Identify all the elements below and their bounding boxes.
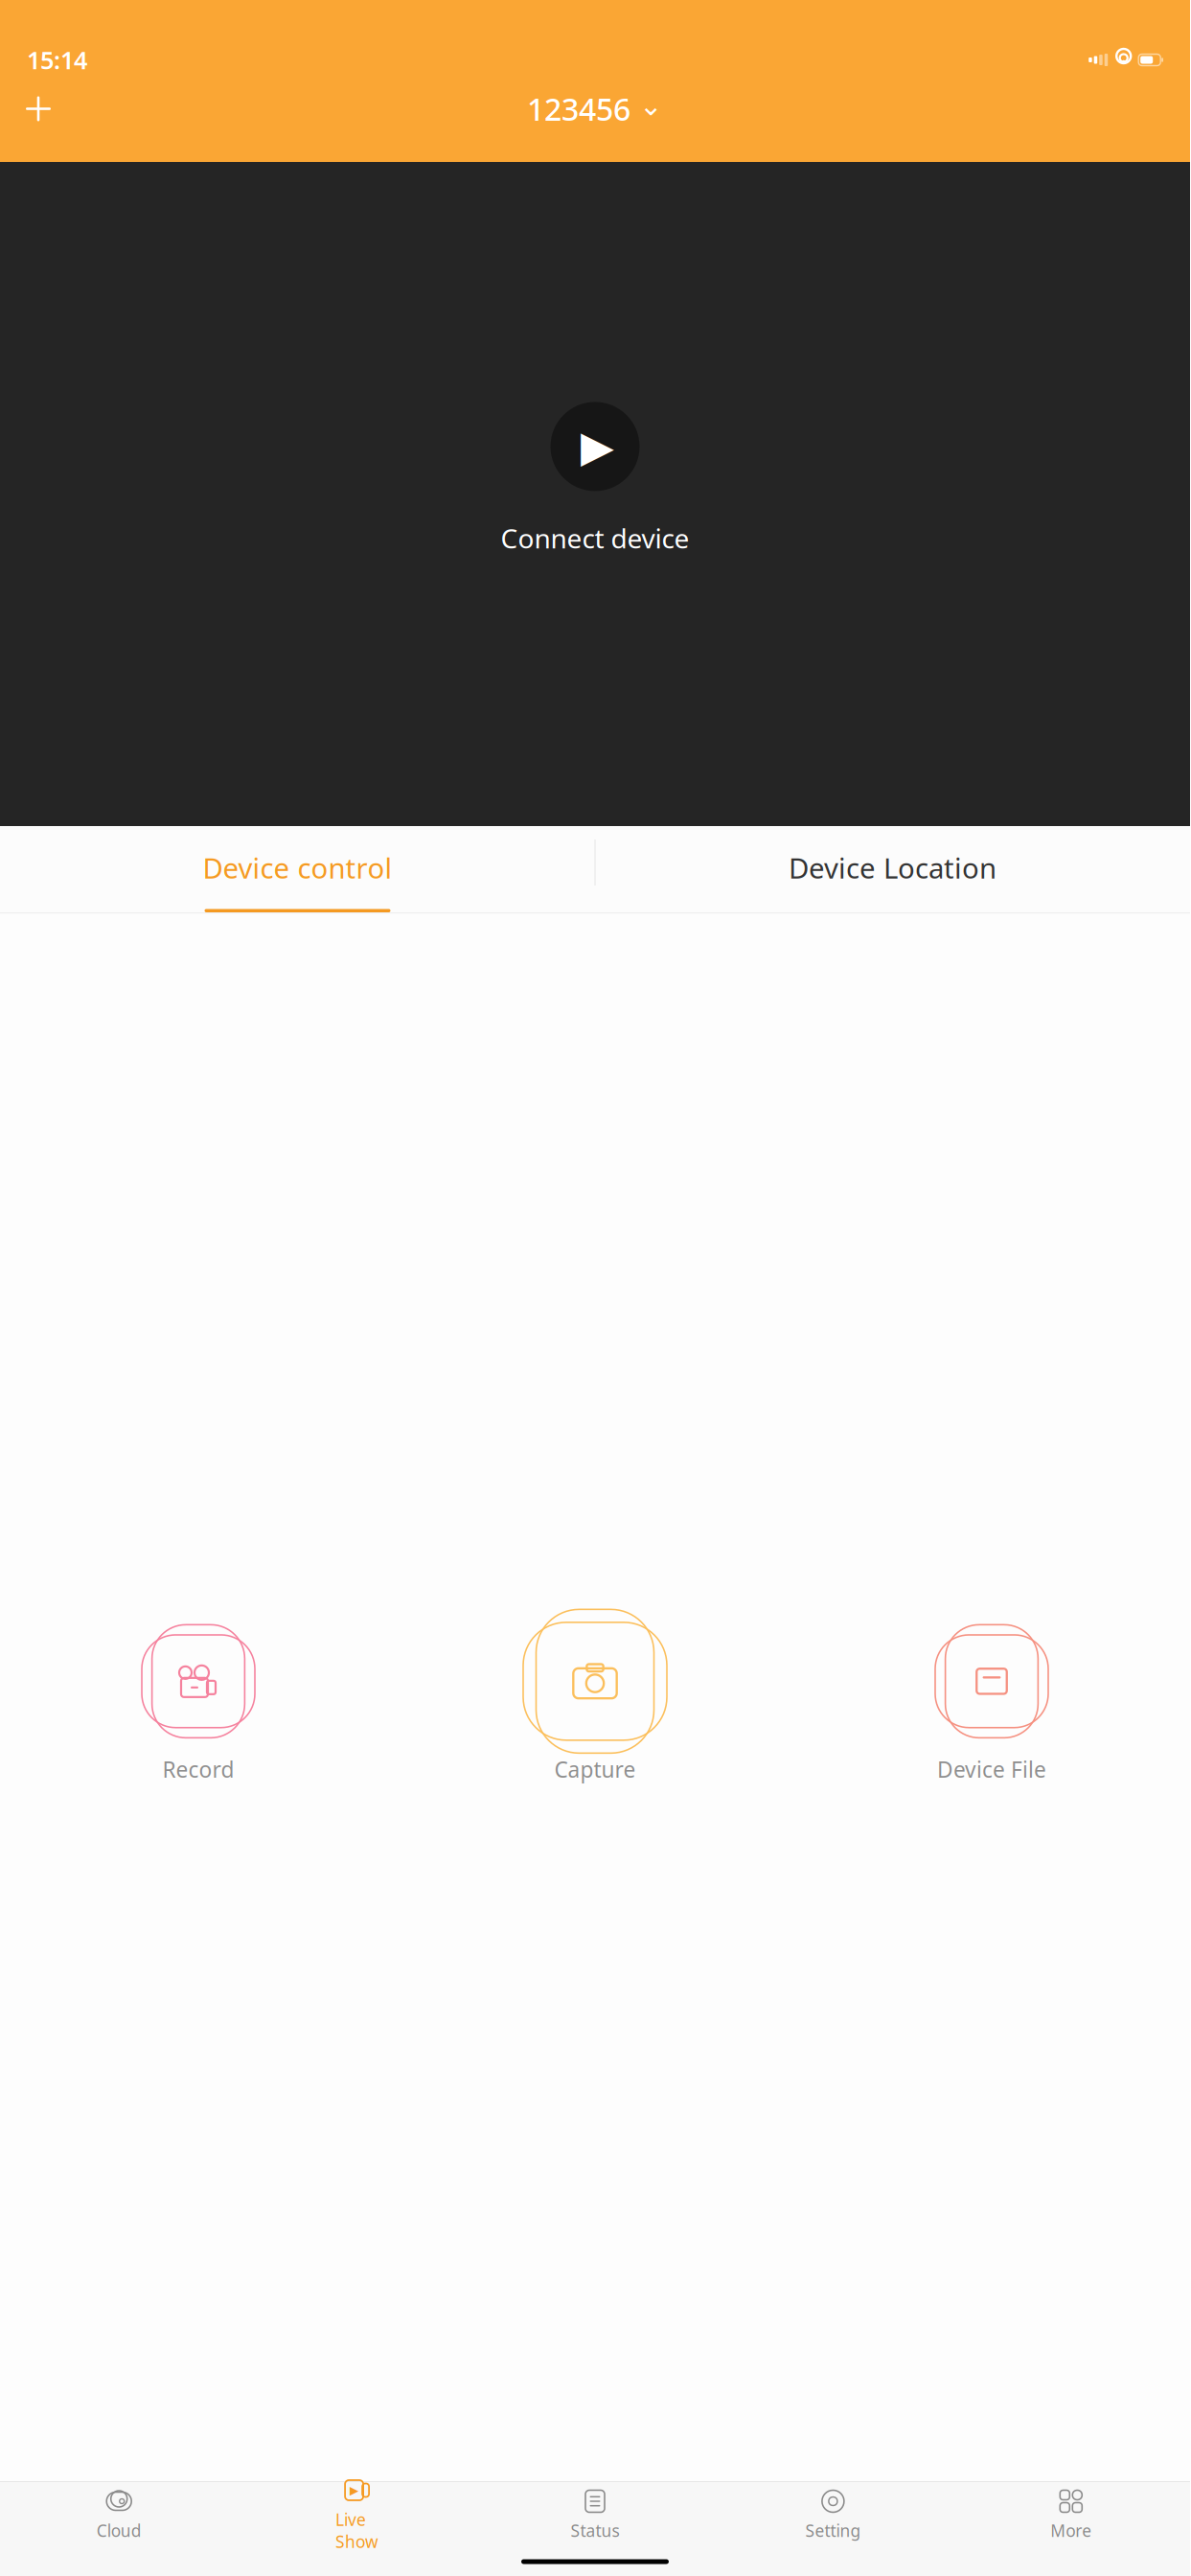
button[interactable]: Capture bbox=[518, 1621, 672, 1784]
staticText: Capture bbox=[554, 1755, 636, 1784]
staticText: 123456 bbox=[527, 88, 630, 129]
staticText: Device Location bbox=[789, 849, 996, 886]
staticText: Cloud bbox=[96, 2519, 142, 2541]
button[interactable]: Status bbox=[557, 2485, 633, 2544]
button[interactable]: Device control bbox=[0, 826, 595, 912]
button[interactable]: 123456 bbox=[517, 86, 673, 132]
button[interactable]: Connect device bbox=[542, 394, 648, 499]
staticText: Live Show bbox=[335, 2508, 379, 2553]
staticText: More bbox=[1050, 2519, 1092, 2541]
button[interactable]: Add device bbox=[13, 84, 63, 134]
staticText: ▶ bbox=[350, 2484, 358, 2497]
staticText: Device control bbox=[203, 849, 392, 886]
staticText: 15:14 bbox=[27, 44, 87, 76]
staticText: Setting bbox=[805, 2519, 861, 2541]
staticText: Connect device bbox=[501, 520, 689, 556]
staticText: ⌄ bbox=[639, 90, 663, 121]
staticText: Device File bbox=[937, 1755, 1046, 1784]
button[interactable]: Setting bbox=[795, 2485, 871, 2544]
staticText: Record bbox=[162, 1755, 234, 1784]
button[interactable]: Device File bbox=[915, 1621, 1068, 1784]
button[interactable]: Cloud bbox=[81, 2485, 157, 2544]
button[interactable]: Record bbox=[122, 1621, 275, 1784]
button[interactable]: Device Location bbox=[595, 826, 1190, 912]
staticText: Status bbox=[571, 2519, 619, 2541]
button[interactable]: More bbox=[1033, 2485, 1109, 2544]
button[interactable]: ▶ bbox=[319, 2485, 395, 2544]
staticText: ▶ bbox=[581, 422, 614, 471]
